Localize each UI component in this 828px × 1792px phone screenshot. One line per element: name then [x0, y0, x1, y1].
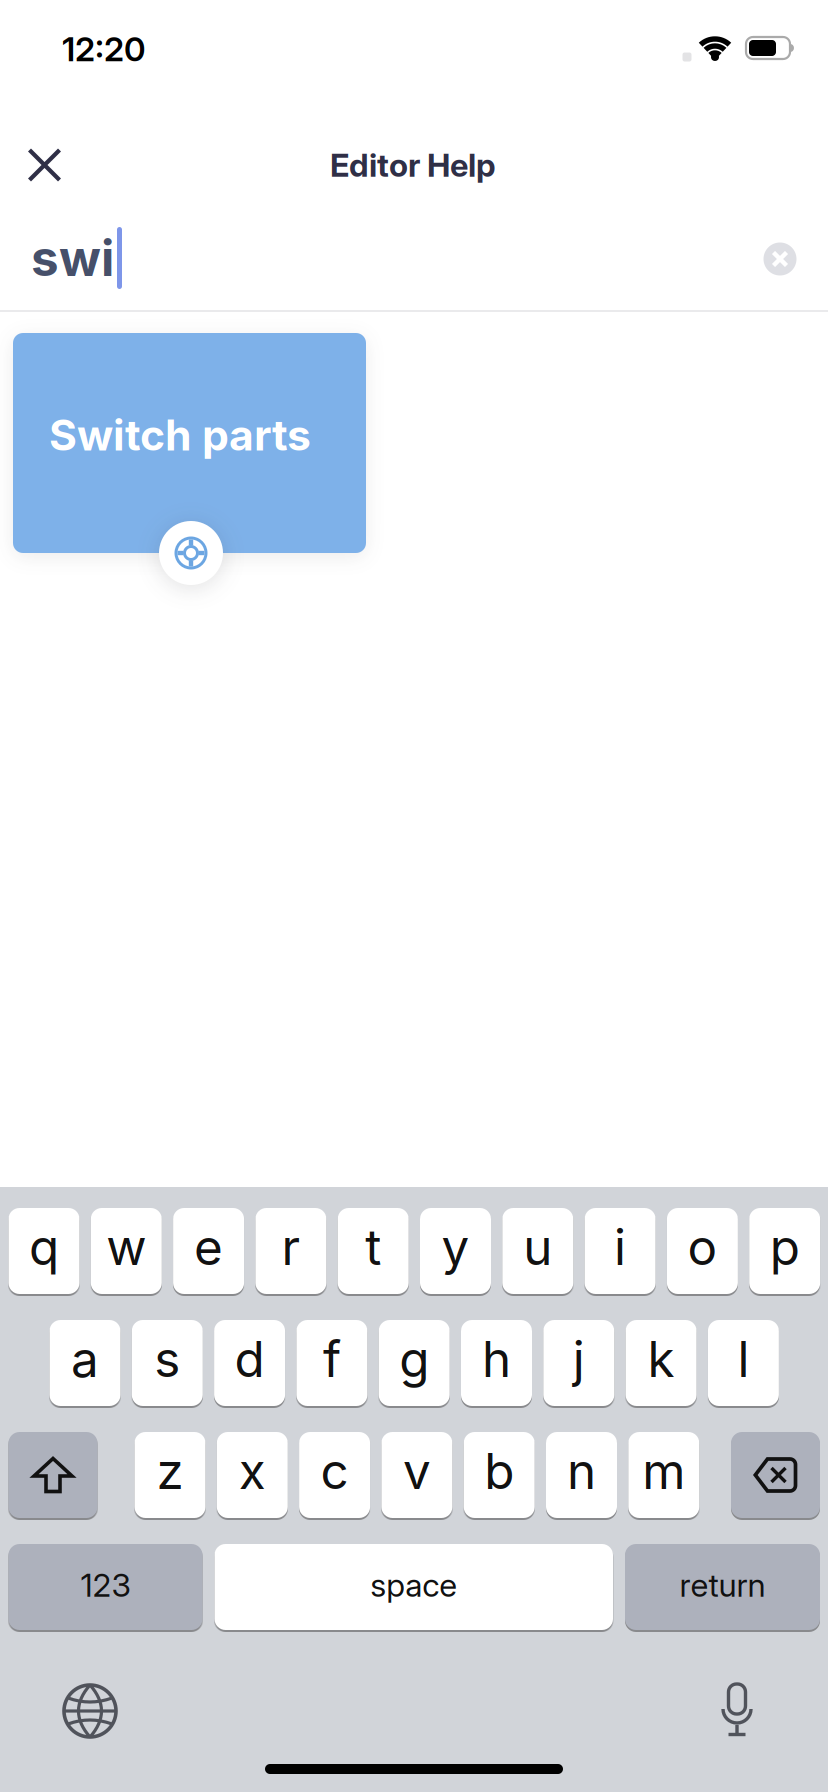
button[interactable]: Next keyboard	[54, 1675, 126, 1747]
button[interactable]: o	[667, 1207, 738, 1295]
staticText: f	[323, 1330, 341, 1388]
button[interactable]: z	[134, 1431, 205, 1519]
button[interactable]: u	[502, 1207, 573, 1295]
staticText: swi	[31, 229, 114, 287]
staticText: 12:20	[62, 29, 146, 69]
button[interactable]: 123	[8, 1543, 202, 1631]
staticText: e	[194, 1218, 223, 1276]
staticText: 123	[80, 1566, 130, 1604]
button[interactable]: e	[173, 1207, 244, 1295]
staticText: n	[567, 1442, 596, 1500]
staticText: x	[239, 1442, 266, 1500]
staticText: v	[403, 1442, 431, 1500]
button[interactable]: f	[296, 1319, 367, 1407]
button[interactable]: i	[585, 1207, 656, 1295]
staticText: i	[614, 1218, 626, 1276]
staticText: y	[441, 1218, 469, 1276]
button[interactable]: return	[625, 1543, 820, 1631]
button[interactable]: t	[338, 1207, 409, 1295]
staticText: l	[737, 1330, 749, 1388]
staticText: h	[482, 1330, 511, 1388]
button[interactable]: k	[626, 1319, 697, 1407]
button[interactable]: w	[91, 1207, 162, 1295]
button[interactable]: r	[255, 1207, 326, 1295]
staticText: p	[770, 1218, 800, 1276]
button[interactable]	[13, 333, 366, 553]
button[interactable]: Clear text	[763, 242, 796, 275]
button[interactable]: q	[8, 1207, 79, 1295]
button[interactable]: Close	[17, 138, 71, 192]
staticText: s	[154, 1330, 180, 1388]
button[interactable]: h	[461, 1319, 532, 1407]
staticText: j	[573, 1330, 585, 1388]
staticText: z	[156, 1442, 183, 1500]
staticText: t	[365, 1218, 381, 1276]
staticText: return	[679, 1566, 765, 1604]
button[interactable]: v	[381, 1431, 452, 1519]
staticText: m	[642, 1442, 685, 1500]
staticText: k	[648, 1330, 675, 1388]
staticText: g	[399, 1330, 429, 1388]
staticText: o	[687, 1218, 717, 1276]
staticText: c	[321, 1442, 349, 1500]
staticText: r	[281, 1218, 300, 1276]
button[interactable]: c	[299, 1431, 370, 1519]
staticText: Editor Help	[330, 146, 496, 184]
button[interactable]: b	[464, 1431, 535, 1519]
button[interactable]: g	[379, 1319, 450, 1407]
button[interactable]: j	[543, 1319, 614, 1407]
staticText: d	[235, 1330, 265, 1388]
staticText: space	[370, 1566, 457, 1604]
button[interactable]: Dictate	[710, 1673, 764, 1749]
staticText: w	[106, 1218, 146, 1276]
staticText: b	[484, 1442, 514, 1500]
button[interactable]: a	[49, 1319, 120, 1407]
button[interactable]: Shift	[8, 1431, 97, 1519]
button[interactable]: l	[708, 1319, 779, 1407]
button[interactable]: d	[214, 1319, 285, 1407]
button[interactable]: s	[132, 1319, 203, 1407]
button[interactable]: p	[749, 1207, 820, 1295]
staticText: u	[523, 1218, 552, 1276]
staticText: q	[29, 1218, 59, 1276]
button[interactable]: m	[628, 1431, 699, 1519]
staticText: Switch parts	[49, 410, 311, 460]
button[interactable]: Delete	[731, 1431, 820, 1519]
staticText: a	[71, 1330, 99, 1388]
button[interactable]: n	[546, 1431, 617, 1519]
button[interactable]: y	[420, 1207, 491, 1295]
button[interactable]: x	[217, 1431, 288, 1519]
button[interactable]: space	[214, 1543, 613, 1631]
